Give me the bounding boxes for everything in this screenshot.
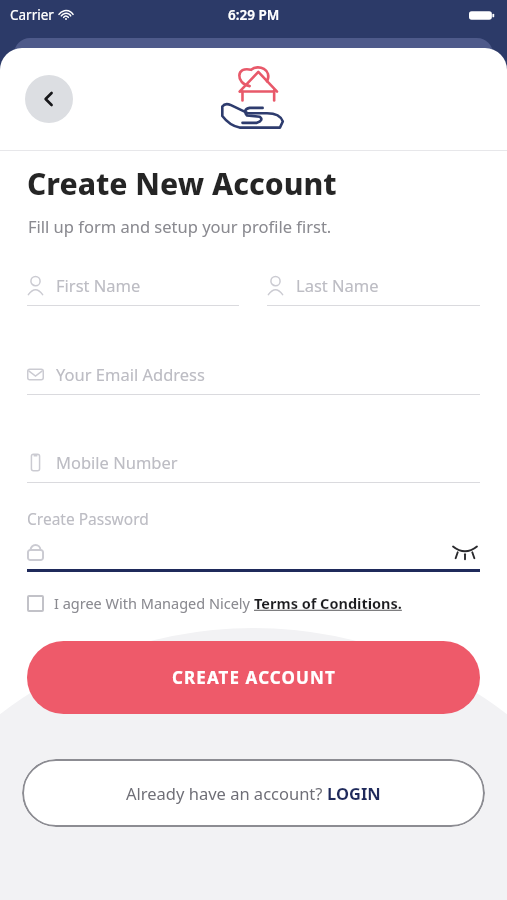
button[interactable]: CREATE ACCOUNT [27, 641, 480, 714]
staticText: 6:29 PM [228, 6, 280, 24]
button[interactable]: Show password [450, 540, 480, 562]
button[interactable]: First Name [27, 274, 239, 306]
staticText: Create Password [27, 508, 149, 529]
staticText: First Name [56, 274, 141, 296]
button[interactable]: Create Password [27, 508, 480, 572]
staticText: I agree With Managed Nicely [54, 593, 254, 613]
staticText: CREATE ACCOUNT [172, 666, 336, 689]
button[interactable]: Last Name [267, 274, 480, 306]
button[interactable]: Back [25, 75, 73, 123]
staticText: Already have an account? [126, 782, 327, 804]
staticText: LOGIN [327, 782, 381, 804]
button[interactable]: Your Email Address [27, 363, 480, 395]
staticText: Carrier [10, 6, 54, 24]
staticText: Your Email Address [56, 363, 205, 385]
button[interactable]: Mobile Number [27, 451, 480, 483]
button[interactable]: Already have an account? [22, 759, 485, 827]
staticText: Mobile Number [56, 451, 178, 473]
staticText: Last Name [296, 274, 379, 296]
button[interactable]: I agree With Managed Nicely [27, 593, 402, 613]
staticText: Fill up form and setup your profile firs… [28, 215, 332, 237]
staticText: Terms of Conditions. [254, 593, 402, 613]
staticText: Create New Account [27, 163, 337, 204]
